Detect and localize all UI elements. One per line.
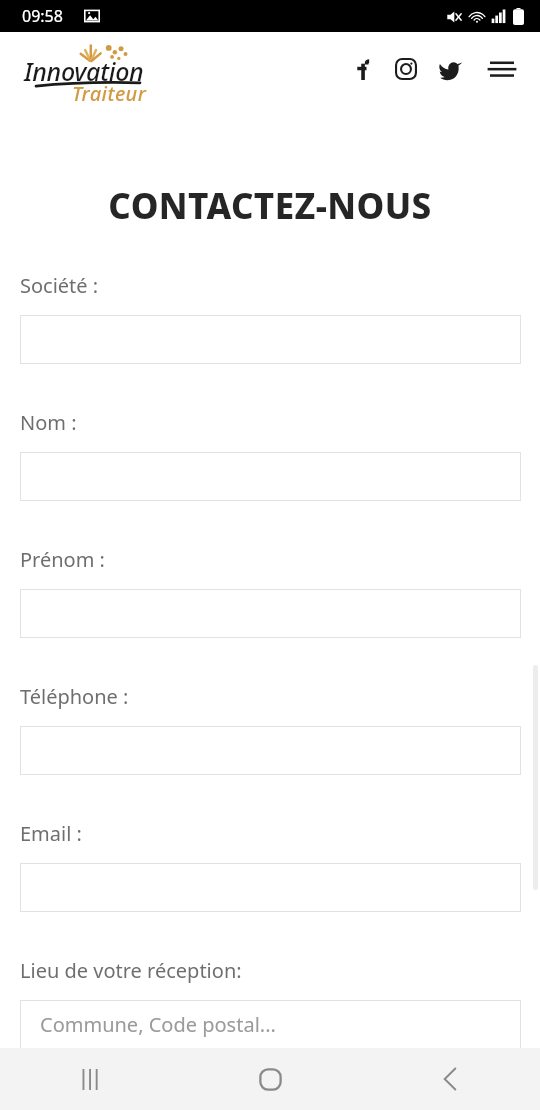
button[interactable] bbox=[20, 452, 521, 501]
button[interactable] bbox=[20, 863, 521, 912]
staticText: Email : bbox=[20, 820, 82, 847]
button[interactable] bbox=[20, 726, 521, 775]
staticText: 09:58 bbox=[22, 5, 63, 27]
staticText: Société : bbox=[20, 272, 99, 299]
staticText: Commune, Code postal... bbox=[40, 1011, 276, 1038]
button[interactable]: Instagram bbox=[385, 48, 427, 90]
button[interactable]: Twitter bbox=[429, 48, 471, 90]
staticText: CONTACTEZ-NOUS bbox=[0, 182, 540, 230]
button[interactable]: Recent apps bbox=[0, 1048, 180, 1110]
button[interactable]: Facebook bbox=[342, 48, 384, 90]
button[interactable] bbox=[20, 589, 521, 638]
staticText: Traiteur bbox=[72, 80, 147, 107]
staticText: Nom : bbox=[20, 409, 77, 436]
button[interactable]: Commune, Code postal... bbox=[20, 1000, 521, 1049]
button[interactable]: Menu bbox=[480, 47, 524, 91]
button[interactable]: Home bbox=[180, 1048, 360, 1110]
staticText: Téléphone : bbox=[20, 683, 129, 710]
button[interactable]: Back bbox=[360, 1048, 540, 1110]
staticText: Prénom : bbox=[20, 546, 105, 573]
button[interactable]: Innovation Traiteur home bbox=[24, 44, 152, 98]
staticText: Lieu de votre réception: bbox=[20, 957, 242, 984]
staticText: Innovation bbox=[24, 54, 144, 88]
button[interactable] bbox=[20, 315, 521, 364]
